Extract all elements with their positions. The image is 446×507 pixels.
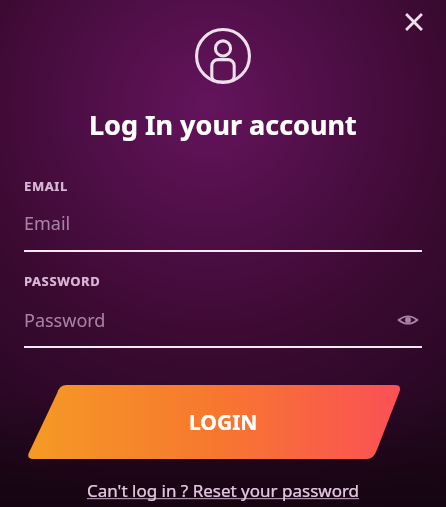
- button[interactable]: Email: [24, 211, 422, 252]
- staticText: Password: [24, 308, 394, 333]
- button[interactable]: LOGIN: [0, 385, 446, 459]
- staticText: EMAIL: [24, 177, 68, 195]
- staticText: Email: [24, 211, 71, 236]
- button[interactable]: Show password: [394, 306, 422, 334]
- staticText: Can't log in ? Reset your password: [87, 479, 360, 502]
- button[interactable]: Password: [24, 306, 422, 348]
- staticText: LOGIN: [189, 408, 258, 437]
- staticText: Log In your account: [89, 106, 357, 143]
- staticText: PASSWORD: [24, 272, 101, 290]
- button[interactable]: Can't log in ? Reset your password: [81, 477, 366, 504]
- button[interactable]: Close: [396, 4, 432, 40]
